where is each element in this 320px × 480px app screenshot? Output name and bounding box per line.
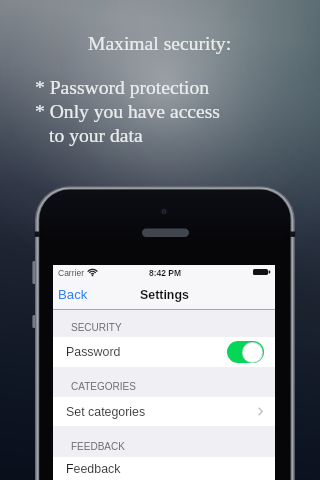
- staticText: SECURITY: [71, 322, 122, 333]
- button[interactable]: Password enabled: [227, 341, 264, 363]
- button[interactable]: Back: [53, 283, 98, 308]
- staticText: Settings: [140, 288, 189, 302]
- staticText: 8:42 PM: [149, 268, 182, 277]
- staticText: Set categories: [66, 405, 146, 419]
- button[interactable]: Password: [53, 337, 275, 367]
- staticText: CATEGORIES: [71, 381, 136, 392]
- button[interactable]: Set categories: [53, 397, 275, 426]
- staticText: Carrier: [58, 268, 84, 277]
- staticText: * Password protection * Only you have ac…: [35, 77, 220, 122]
- staticText: Maximal security:: [88, 33, 232, 55]
- staticText: Feedback: [66, 462, 121, 476]
- staticText: FEEDBACK: [71, 441, 125, 452]
- staticText: to your data: [49, 125, 143, 147]
- button[interactable]: Feedback: [53, 457, 275, 480]
- staticText: Password: [66, 345, 121, 359]
- staticText: Back: [58, 287, 88, 302]
